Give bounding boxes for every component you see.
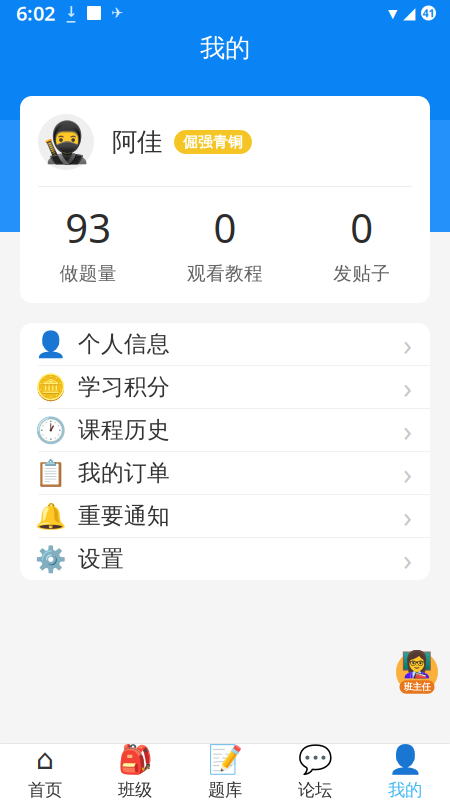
staticText: 班级: [118, 779, 152, 800]
staticText: 阿佳: [112, 126, 162, 157]
staticText: 设置: [78, 545, 124, 573]
staticText: ›: [403, 497, 412, 536]
staticText: 6:02: [16, 0, 55, 26]
staticText: 📝: [207, 743, 242, 775]
button[interactable]: 👤: [20, 323, 430, 366]
button[interactable]: 🕐: [20, 409, 430, 452]
button[interactable]: 🎒: [90, 744, 180, 800]
button[interactable]: 📋: [20, 452, 430, 495]
button[interactable]: 📝: [180, 744, 270, 800]
button[interactable]: 🪙: [20, 366, 430, 409]
staticText: 🕐: [35, 416, 67, 444]
staticText: 41: [422, 6, 434, 20]
staticText: 👤: [35, 330, 67, 358]
staticText: 🔔: [35, 502, 67, 530]
staticText: 做题量: [60, 262, 117, 285]
staticText: 观看教程: [187, 262, 263, 285]
staticText: 🎒: [117, 743, 152, 775]
staticText: 发贴子: [333, 262, 390, 285]
staticText: ⚙️: [35, 545, 67, 573]
staticText: 论坛: [298, 779, 332, 800]
staticText: 0: [213, 201, 236, 254]
staticText: ›: [403, 540, 412, 579]
staticText: 我的: [200, 32, 250, 63]
staticText: 个人信息: [78, 330, 170, 358]
staticText: ▾: [388, 2, 397, 24]
staticText: ›: [403, 325, 412, 364]
staticText: ›: [403, 368, 412, 407]
staticText: 👤: [387, 743, 422, 775]
staticText: ↓: [65, 3, 77, 20]
button[interactable]: 联系班主任: [394, 649, 440, 695]
staticText: 首页: [28, 779, 62, 800]
staticText: 题库: [208, 779, 242, 800]
staticText: ◢: [403, 4, 415, 22]
staticText: 我的: [388, 779, 422, 800]
staticText: ›: [403, 411, 412, 450]
staticText: 重要通知: [78, 502, 170, 530]
staticText: 🥷: [41, 119, 91, 165]
button[interactable]: 👤: [360, 744, 450, 800]
staticText: 倔强青铜: [183, 133, 243, 151]
staticText: ⌂: [36, 743, 54, 775]
staticText: 💬: [297, 743, 332, 775]
staticText: 课程历史: [78, 416, 170, 444]
staticText: 我的订单: [78, 459, 170, 487]
button[interactable]: 🔔: [20, 495, 430, 538]
staticText: 📋: [35, 459, 67, 487]
button[interactable]: ⚙️: [20, 538, 430, 580]
staticText: ›: [403, 454, 412, 493]
button[interactable]: ⌂: [0, 744, 90, 800]
staticText: 🪙: [35, 373, 67, 401]
staticText: ✈: [111, 5, 123, 21]
staticText: 班主任: [403, 681, 430, 693]
staticText: 0: [350, 201, 373, 254]
staticText: 学习积分: [78, 373, 170, 401]
button[interactable]: 💬: [270, 744, 360, 800]
staticText: 👩‍🏫: [401, 650, 433, 679]
staticText: 93: [65, 201, 111, 254]
